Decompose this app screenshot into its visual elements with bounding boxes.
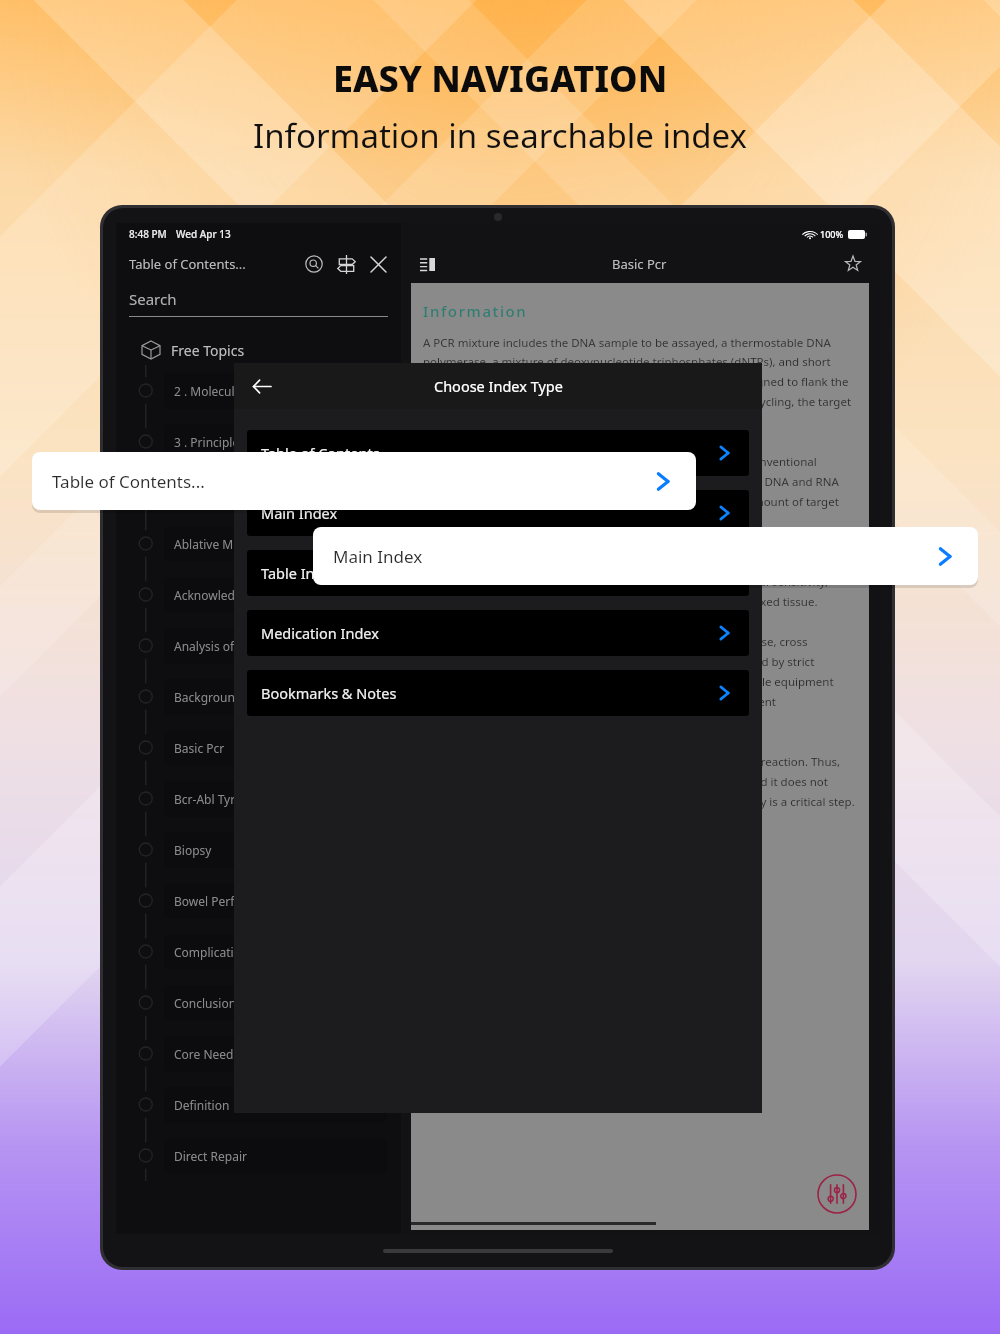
button[interactable]: Background bbox=[164, 679, 387, 715]
button[interactable]: Direct Repair bbox=[164, 1138, 387, 1174]
button[interactable]: Table of Contents bbox=[247, 430, 749, 476]
button[interactable]: 2 . Molecular Diagnostics bbox=[164, 373, 387, 409]
staticText: Information bbox=[423, 301, 528, 321]
staticText: Background bbox=[174, 689, 243, 705]
button[interactable]: Toggle sidebar bbox=[415, 252, 439, 276]
staticText: Complications of bbox=[174, 944, 269, 960]
staticText: Core Needle Biopsy bbox=[174, 1046, 284, 1062]
staticText: Acknowledgments bbox=[174, 587, 278, 603]
staticText: Wed Apr 13 bbox=[176, 227, 231, 241]
button[interactable]: 8 . Principles of Transplantation bbox=[164, 475, 387, 511]
button[interactable]: Analysis of Epigenetics bbox=[164, 628, 387, 664]
button[interactable]: Main Index bbox=[247, 490, 749, 536]
button[interactable]: 3 . Principles and Cancer Therapy bbox=[164, 424, 387, 460]
staticText: Analysis of Epigenetics bbox=[174, 638, 302, 654]
button[interactable]: Ablative Modalities bbox=[164, 526, 387, 562]
button[interactable]: Main Index bbox=[313, 527, 978, 585]
staticText: A PCR mixture includes the DNA sample to… bbox=[423, 335, 857, 810]
staticText: Free Topics bbox=[171, 341, 245, 360]
staticText: Table of Contents... bbox=[52, 470, 205, 493]
staticText: Main Index bbox=[333, 545, 423, 568]
staticText: Table Index bbox=[261, 563, 339, 583]
button[interactable]: Definition bbox=[164, 1087, 387, 1123]
staticText: Basic Pcr bbox=[174, 740, 225, 756]
button[interactable]: Search bbox=[301, 251, 327, 277]
staticText: 8 . Principles of Transplantation bbox=[174, 485, 352, 501]
staticText: Search bbox=[129, 289, 177, 309]
button[interactable]: Table Index bbox=[247, 550, 749, 596]
button[interactable]: Bookmark bbox=[841, 252, 865, 276]
staticText: EASY NAVIGATION bbox=[333, 54, 668, 103]
staticText: Medication Index bbox=[261, 623, 379, 643]
button[interactable]: Bowel Perforation bbox=[164, 883, 387, 919]
button[interactable]: Bookmarks & Notes bbox=[247, 670, 749, 716]
staticText: 100% bbox=[820, 228, 844, 240]
button[interactable]: Core Needle Biopsy bbox=[164, 1036, 387, 1072]
staticText: Direct Repair bbox=[174, 1148, 247, 1164]
button[interactable]: Basic Pcr bbox=[164, 730, 387, 766]
staticText: Basic Pcr bbox=[612, 255, 667, 273]
button[interactable]: Back bbox=[244, 369, 278, 403]
staticText: Conclusion bbox=[174, 995, 237, 1011]
button[interactable]: Conclusion bbox=[164, 985, 387, 1021]
staticText: Main Index bbox=[261, 503, 338, 523]
staticText: Table of Contents... bbox=[129, 255, 246, 273]
staticText: Choose Index Type bbox=[434, 376, 563, 396]
button[interactable]: Bcr-Abl Tyrosine bbox=[164, 781, 387, 817]
button[interactable]: Acknowledgments bbox=[164, 577, 387, 613]
staticText: Bcr-Abl Tyrosine bbox=[174, 791, 266, 807]
staticText: 2 . Molecular Diagnostics bbox=[174, 383, 315, 399]
button[interactable]: Complications of bbox=[164, 934, 387, 970]
staticText: Biopsy bbox=[174, 842, 212, 858]
button[interactable]: Display settings bbox=[817, 1174, 857, 1214]
button[interactable]: Close bbox=[365, 251, 391, 277]
staticText: 3 . Principles and Cancer Therapy bbox=[174, 434, 361, 450]
staticText: Definition bbox=[174, 1097, 230, 1113]
staticText: Table of Contents bbox=[261, 443, 380, 463]
staticText: Bookmarks & Notes bbox=[261, 683, 397, 703]
button[interactable]: Navigate bbox=[333, 251, 359, 277]
button[interactable]: Table of Contents... bbox=[32, 452, 696, 510]
staticText: Bowel Perforation bbox=[174, 893, 276, 909]
staticText: Information in searchable index bbox=[253, 113, 748, 158]
button[interactable]: Biopsy bbox=[164, 832, 387, 868]
staticText: Ablative Modalities bbox=[174, 536, 281, 552]
button[interactable]: Free Topics bbox=[142, 335, 401, 365]
staticText: 8:48 PM bbox=[129, 227, 167, 241]
button[interactable]: Medication Index bbox=[247, 610, 749, 656]
